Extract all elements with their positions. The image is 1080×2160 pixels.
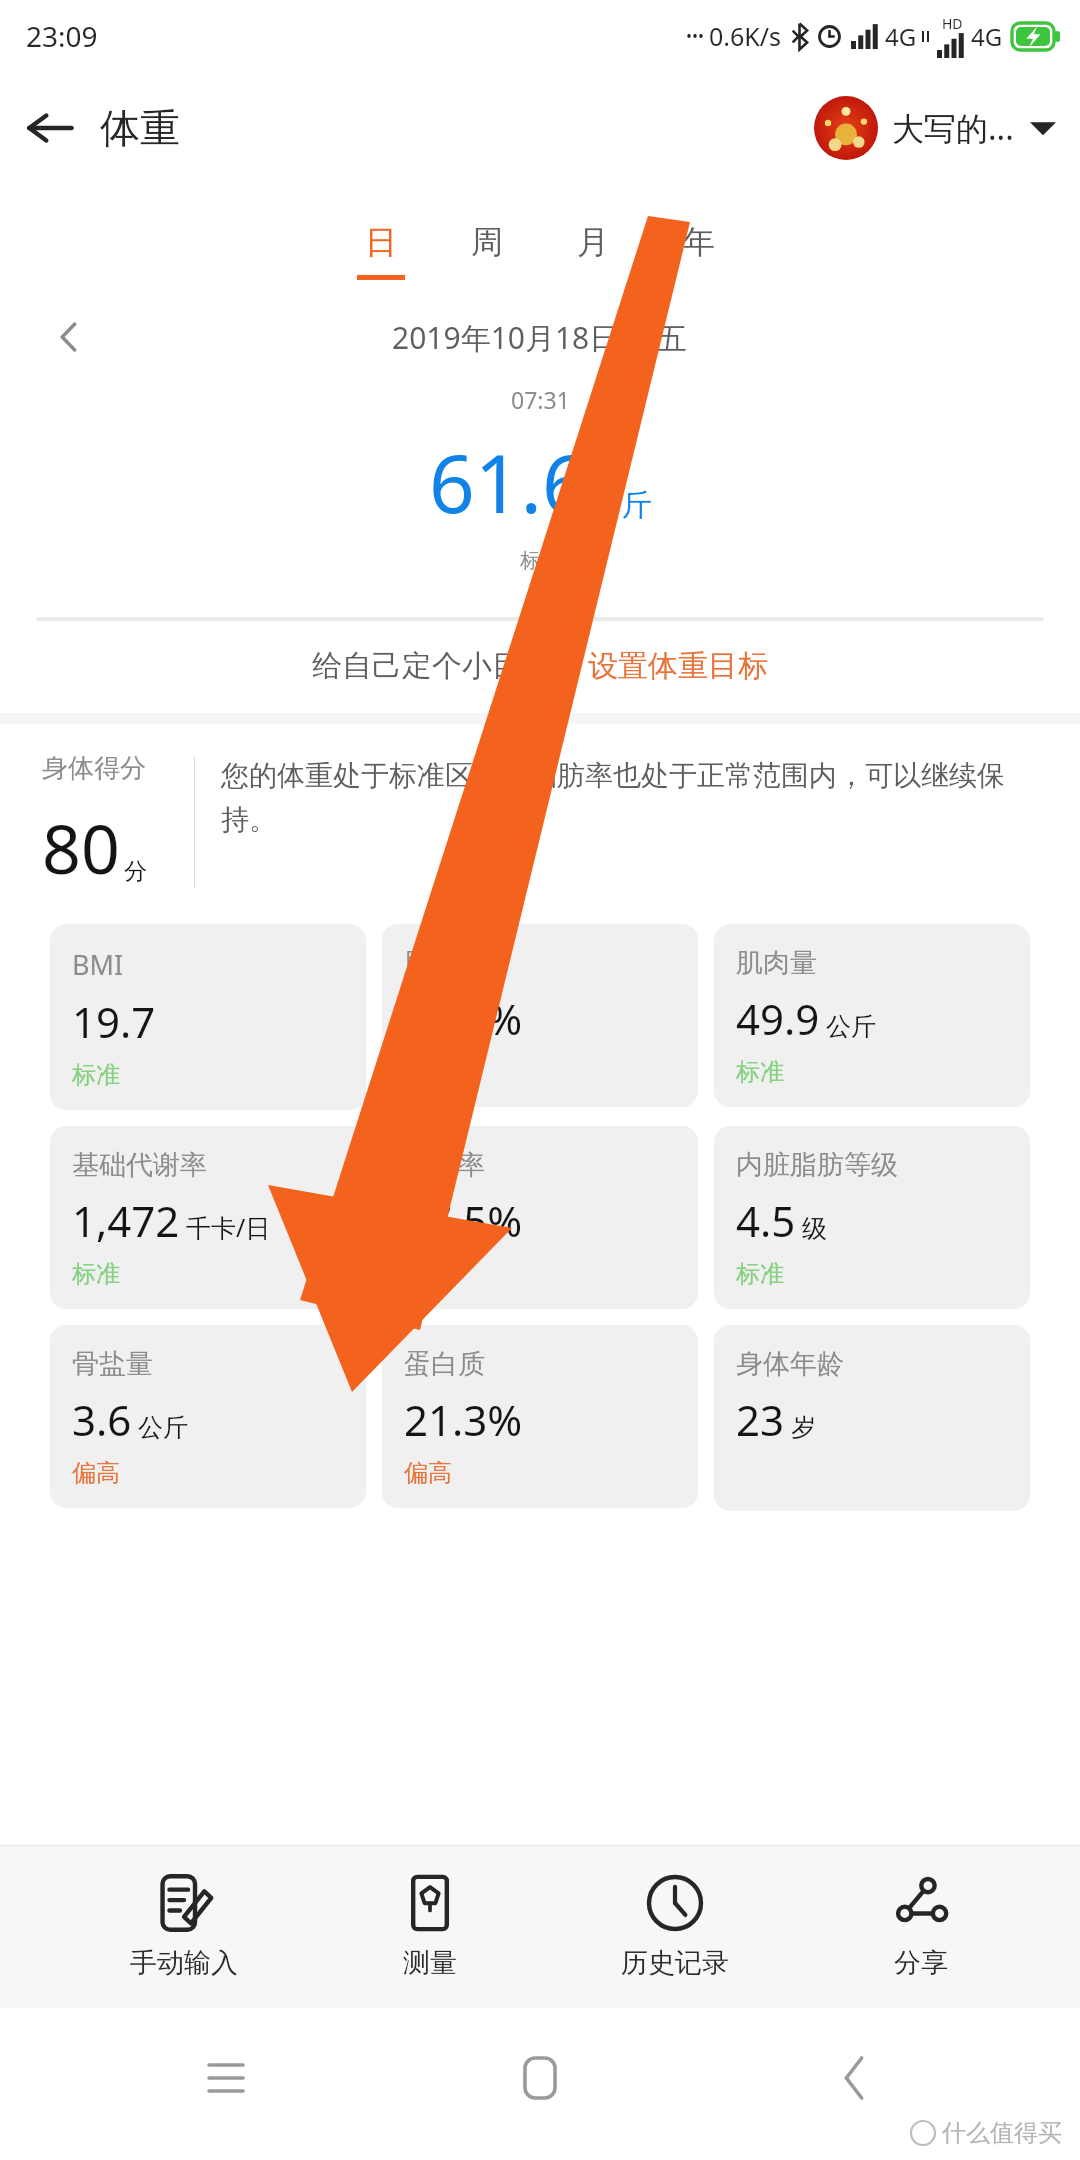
- staticText: 月: [577, 222, 609, 262]
- staticText: 49.9: [736, 990, 820, 1047]
- staticText: 设置体重目标: [588, 647, 768, 685]
- staticText: 周: [471, 222, 503, 262]
- staticText: 偏高: [72, 1458, 120, 1488]
- button[interactable]: 大写的...: [810, 90, 1060, 166]
- staticText: 身体得分: [42, 752, 146, 785]
- staticText: 标准: [736, 1057, 784, 1087]
- staticText: 偏高: [404, 1458, 452, 1488]
- staticText: 公斤: [592, 486, 652, 524]
- button[interactable]: 月: [540, 218, 646, 284]
- staticText: 历史记录: [621, 1946, 729, 1980]
- button[interactable]: 身体年龄: [714, 1325, 1030, 1511]
- staticText: 分: [124, 857, 147, 886]
- staticText: 手动输入: [130, 1946, 238, 1980]
- staticText: 61.6: [429, 427, 588, 536]
- button[interactable]: 基础代谢率: [50, 1126, 366, 1309]
- staticText: 3.6: [72, 1391, 132, 1448]
- staticText: 测量: [403, 1946, 457, 1980]
- staticText: 级: [802, 1213, 827, 1244]
- staticText: 0.6K/s: [709, 19, 782, 53]
- staticText: 骨盐量: [72, 1347, 153, 1381]
- staticText: 您的体重处于标准区间，脂肪率也处于正常范围内，可以继续保持。: [221, 758, 1044, 837]
- staticText: 年: [683, 222, 715, 262]
- staticText: 4.5: [736, 1192, 796, 1249]
- button[interactable]: Back: [0, 78, 100, 178]
- staticText: 肌肉量: [736, 946, 817, 980]
- button[interactable]: Previous day: [40, 308, 98, 366]
- staticText: 标准: [72, 1259, 120, 1289]
- staticText: 岁: [791, 1412, 816, 1443]
- staticText: 日: [365, 222, 397, 262]
- staticText: 标准: [72, 1060, 120, 1090]
- staticText: 内脏脂肪等级: [736, 1148, 898, 1182]
- button[interactable]: 设置体重目标: [588, 647, 768, 685]
- staticText: 水分率: [404, 1148, 485, 1182]
- button[interactable]: 日: [328, 218, 434, 284]
- button[interactable]: 测量: [369, 1864, 491, 1990]
- staticText: 蛋白质: [404, 1347, 485, 1381]
- button[interactable]: Home: [504, 2042, 576, 2114]
- staticText: 什么值得买: [942, 2118, 1062, 2148]
- staticText: 公斤: [826, 1011, 876, 1042]
- staticText: HD: [942, 14, 963, 33]
- staticText: 给自己定个小目标！: [312, 647, 582, 685]
- button[interactable]: 蛋白质: [382, 1325, 698, 1508]
- staticText: 2019年10月18日 周五: [392, 317, 688, 358]
- button[interactable]: 年: [646, 218, 752, 284]
- staticText: 4G: [885, 20, 917, 53]
- staticText: 4G: [971, 20, 1003, 53]
- staticText: 07:31: [511, 384, 570, 415]
- staticText: 57.5%: [404, 1192, 523, 1249]
- button[interactable]: 骨盐量: [50, 1325, 366, 1508]
- staticText: 1,472: [72, 1192, 180, 1249]
- staticText: 80: [42, 801, 120, 894]
- staticText: 13.1%: [404, 990, 523, 1047]
- staticText: 19.7: [72, 993, 156, 1050]
- staticText: 身体年龄: [736, 1347, 844, 1381]
- button[interactable]: 脂肪率: [382, 924, 698, 1107]
- staticText: BMI: [72, 946, 124, 983]
- staticText: 标准: [736, 1259, 784, 1289]
- button[interactable]: 历史记录: [589, 1864, 761, 1990]
- staticText: 脂肪率: [404, 946, 485, 980]
- staticText: 基础代谢率: [72, 1148, 207, 1182]
- staticText: •••: [686, 25, 705, 47]
- button[interactable]: 肌肉量: [714, 924, 1030, 1107]
- button[interactable]: 内脏脂肪等级: [714, 1126, 1030, 1309]
- button[interactable]: Menu: [190, 2042, 262, 2114]
- staticText: 23: [736, 1391, 785, 1448]
- staticText: 23:09: [26, 17, 98, 55]
- button[interactable]: Back: [818, 2042, 890, 2114]
- button[interactable]: 分享: [860, 1864, 982, 1990]
- button[interactable]: 周: [434, 218, 540, 284]
- staticText: 标准: [520, 548, 560, 573]
- button[interactable]: 手动输入: [98, 1864, 270, 1990]
- button[interactable]: 水分率: [382, 1126, 698, 1309]
- staticText: 体重: [100, 103, 180, 153]
- staticText: 千卡/日: [186, 1210, 271, 1244]
- button[interactable]: BMI: [50, 924, 366, 1110]
- staticText: 分享: [894, 1946, 948, 1980]
- staticText: 21.3%: [404, 1391, 523, 1448]
- staticText: 大写的...: [892, 106, 1014, 150]
- staticText: 公斤: [138, 1412, 188, 1443]
